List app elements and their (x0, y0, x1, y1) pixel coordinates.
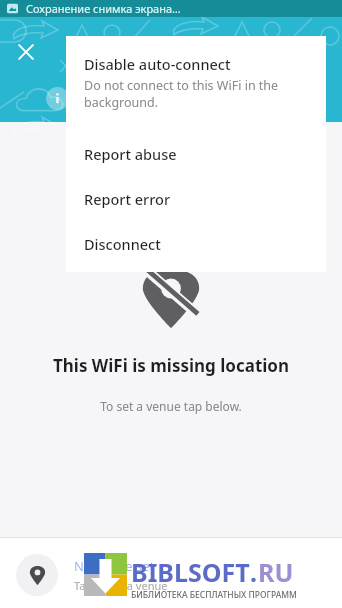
staticText: Сохранение снимка экрана… (26, 1, 181, 16)
button[interactable]: Information (46, 87, 69, 110)
staticText: RU (258, 555, 294, 589)
staticText: BIBLSOFT (131, 555, 250, 589)
button[interactable]: Close (10, 36, 42, 68)
staticText: БИБЛИОТЕКА БЕСПЛАТНЫХ ПРОГРАММ (131, 589, 297, 601)
staticText: Disable auto-connect (84, 54, 231, 74)
staticText: Tap to set a venue (74, 578, 168, 593)
staticText: Do not connect to this WiFi in the backg… (84, 77, 279, 110)
button[interactable]: No venue set (0, 545, 342, 605)
staticText: No venue set (74, 557, 155, 575)
button[interactable]: Disconnect (66, 221, 326, 266)
staticText: Disconnect (84, 234, 161, 254)
staticText: Report abuse (84, 144, 177, 164)
button[interactable]: Disable auto-connect (66, 36, 326, 116)
button[interactable]: Report abuse (66, 131, 326, 176)
staticText: . (250, 555, 258, 589)
staticText: This WiFi is missing location (0, 354, 342, 377)
staticText: To set a venue tap below. (0, 398, 342, 414)
button[interactable]: Report error (66, 176, 326, 221)
staticText: Report error (84, 189, 171, 209)
